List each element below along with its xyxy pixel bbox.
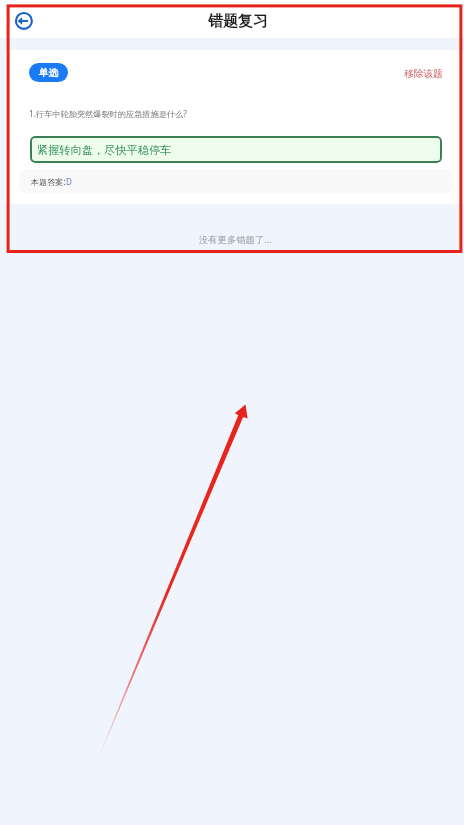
staticText: 错题复习	[208, 12, 268, 31]
button[interactable]: 移除该题	[404, 68, 443, 80]
staticText: 本题答案:	[31, 176, 66, 187]
staticText: D	[66, 176, 72, 187]
staticText: 没有更多错题了...	[199, 233, 272, 246]
button[interactable]: 紧握转向盘，尽快平稳停车	[30, 136, 442, 163]
staticText: 单选	[39, 67, 58, 79]
staticText: 移除该题	[404, 68, 443, 80]
staticText: 1.行车中轮胎突然爆裂时的应急措施是什么?	[29, 108, 187, 119]
button[interactable]: Back	[11, 8, 37, 34]
staticText: 紧握转向盘，尽快平稳停车	[37, 143, 172, 157]
button[interactable]: 单选	[29, 63, 68, 82]
